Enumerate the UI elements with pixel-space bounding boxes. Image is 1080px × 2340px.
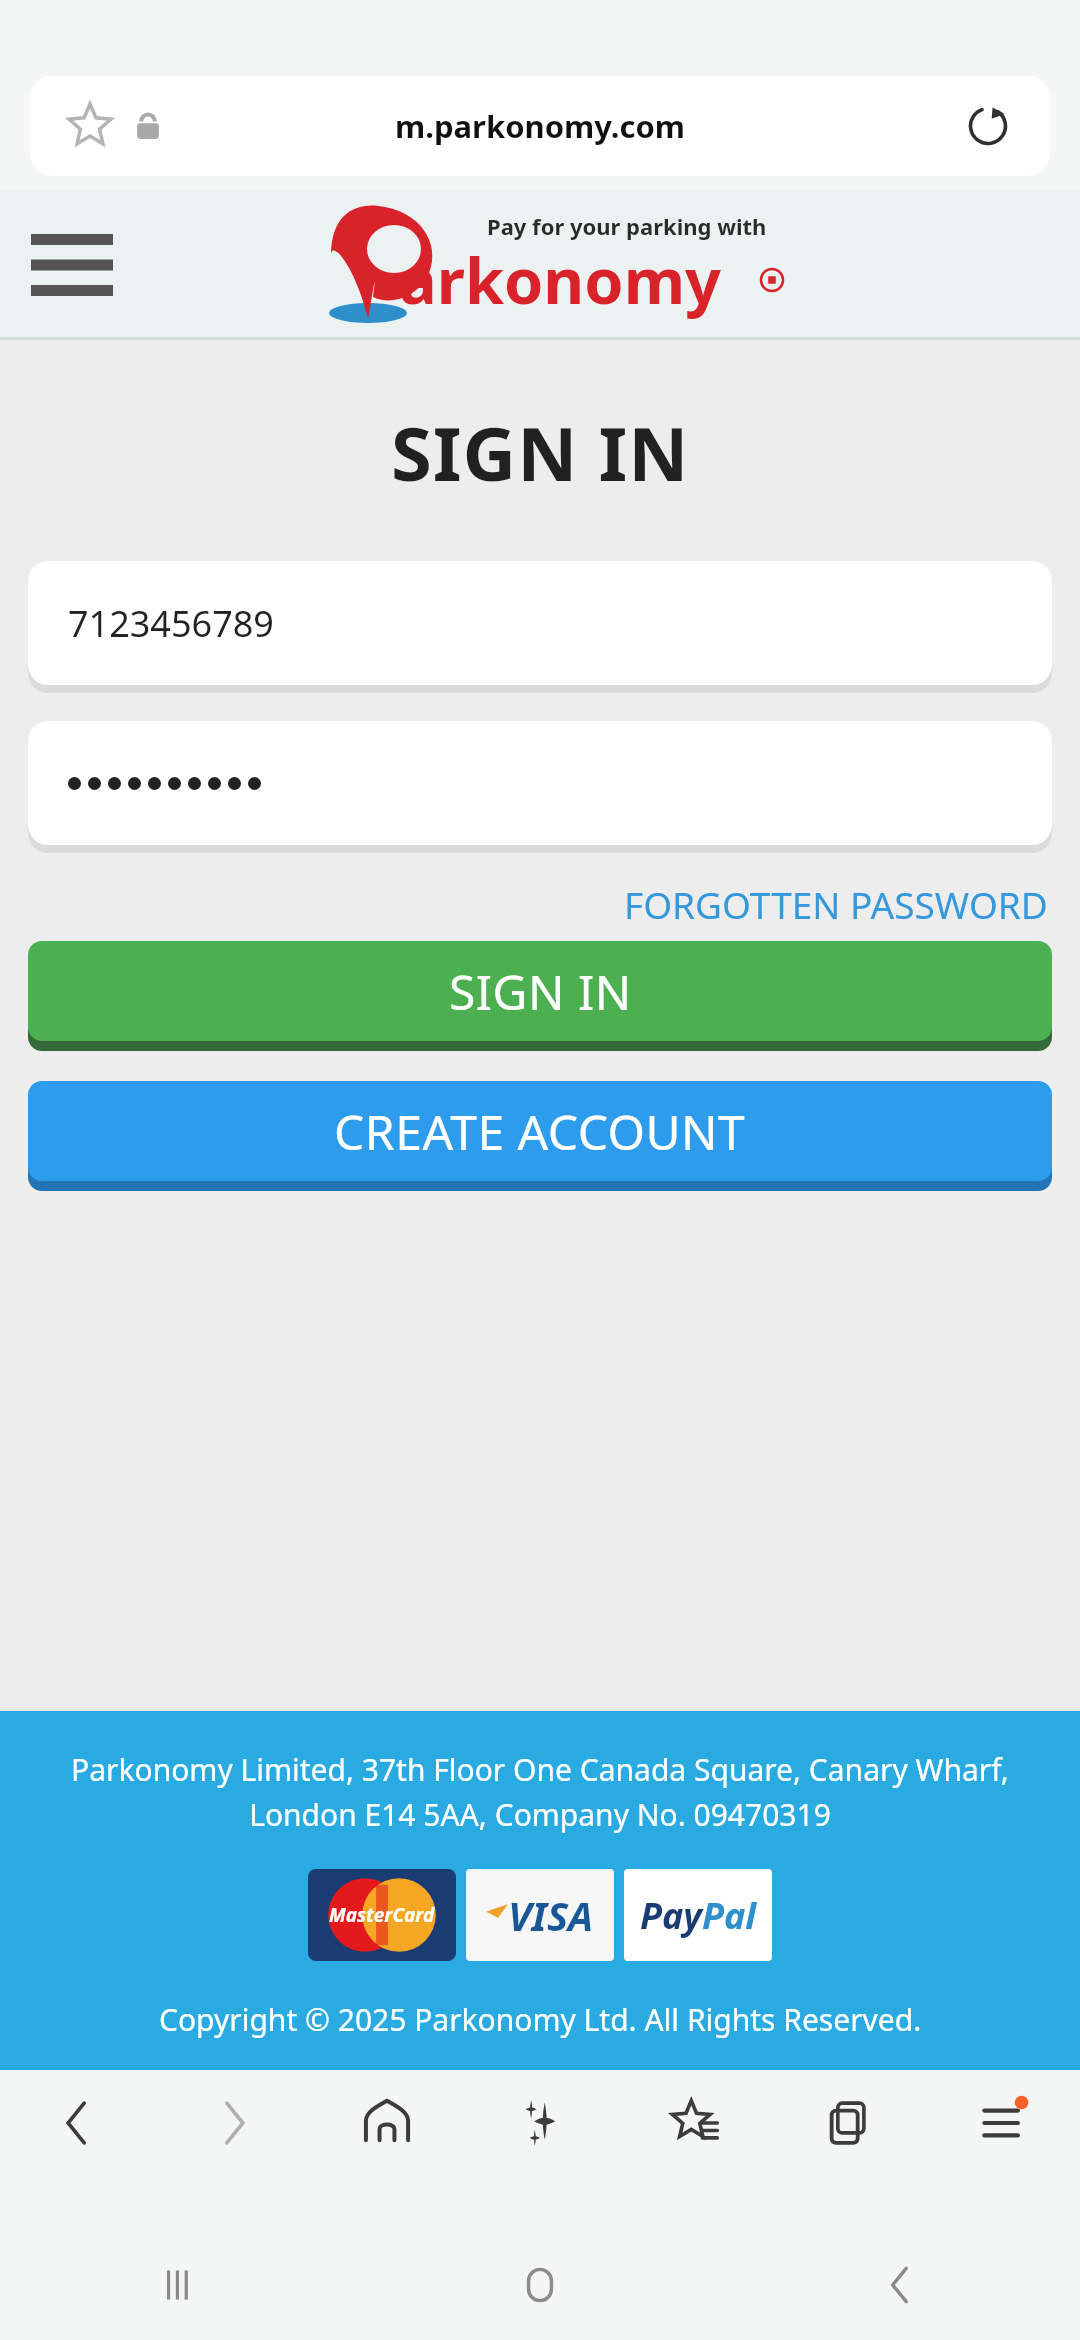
button[interactable]: SIGN IN	[28, 941, 1052, 1041]
staticText: MasterCard	[329, 1902, 435, 1928]
button[interactable]: Home	[310, 2070, 464, 2230]
staticText: 7123456789	[68, 599, 274, 648]
staticText: SIGN IN	[449, 959, 632, 1024]
button[interactable]: Bookmark	[66, 102, 114, 150]
button[interactable]: Back	[0, 2070, 155, 2230]
staticText: CREATE ACCOUNT	[334, 1099, 746, 1164]
button[interactable]: FORGOTTEN PASSWORD	[620, 875, 1052, 933]
staticText: Copyright © 2025 Parkonomy Ltd. All Righ…	[159, 1999, 922, 2040]
staticText: SIGN IN	[391, 402, 690, 503]
staticText: Pal	[702, 1891, 757, 1940]
button[interactable]	[28, 721, 1052, 845]
button[interactable]: Home	[360, 2230, 720, 2340]
other: PayPal accepted	[624, 1869, 772, 1961]
staticText: Parkonomy Limited, 37th Floor One Canada…	[24, 1749, 1056, 1835]
other: Site security	[128, 106, 168, 146]
button[interactable]: Bookmarks	[618, 2070, 772, 2230]
staticText: Pay	[640, 1891, 702, 1940]
staticText: arkonomy	[399, 237, 722, 323]
button[interactable]: Reload page	[962, 100, 1014, 152]
button[interactable]: Parkonomy home	[315, 205, 785, 325]
button[interactable]: Tabs	[772, 2070, 926, 2230]
staticText: FORGOTTEN PASSWORD	[624, 879, 1048, 929]
button[interactable]: Recent apps	[0, 2230, 360, 2340]
staticText: m.parkonomy.com	[395, 105, 686, 147]
button[interactable]: Forward	[155, 2070, 310, 2230]
staticText: VISA	[508, 1888, 594, 1942]
button[interactable]: Menu	[24, 210, 120, 320]
staticText: Pay for your parking with	[487, 211, 767, 241]
button[interactable]: Back	[720, 2230, 1080, 2340]
other: Visa accepted	[466, 1869, 614, 1961]
button[interactable]: 7123456789	[28, 561, 1052, 685]
button[interactable]: CREATE ACCOUNT	[28, 1081, 1052, 1181]
button[interactable]: Bookmark	[30, 76, 1050, 176]
button[interactable]: More options	[926, 2070, 1080, 2230]
button[interactable]: AI assistant	[464, 2070, 618, 2230]
other: MasterCard accepted	[308, 1869, 456, 1961]
